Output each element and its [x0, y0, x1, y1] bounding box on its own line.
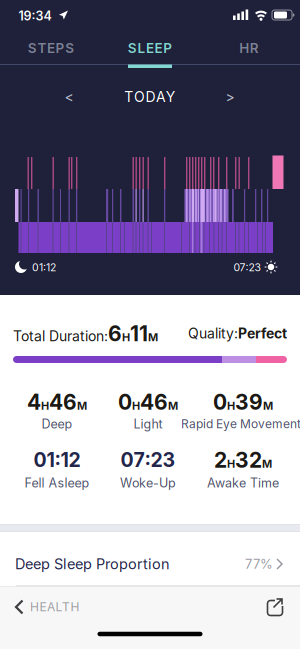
- staticText: HEALTH: [30, 600, 79, 614]
- button[interactable]: Back to Health: [14, 587, 118, 627]
- button[interactable]: STEPS: [4, 31, 98, 64]
- staticText: <: [64, 88, 73, 105]
- staticText: STEPS: [28, 40, 74, 56]
- staticText: TODAY: [124, 88, 176, 105]
- staticText: Woke-Up: [120, 475, 176, 490]
- staticText: 01:12: [32, 261, 56, 274]
- staticText: SLEEP: [128, 40, 172, 56]
- staticText: Total Duration:6H11M: [13, 321, 158, 346]
- staticText: >: [225, 88, 234, 105]
- staticText: 0H46M: [118, 390, 178, 414]
- button[interactable]: SLEEP: [103, 31, 197, 64]
- button[interactable]: Next day: [215, 84, 245, 110]
- staticText: HR: [239, 40, 259, 56]
- staticText: Fell Asleep: [24, 475, 89, 490]
- staticText: Awake Time: [207, 475, 279, 490]
- staticText: 0H39M: [213, 390, 273, 414]
- staticText: Rapid Eye Movement: [181, 417, 300, 431]
- staticText: 19:34: [18, 8, 51, 23]
- button[interactable]: Deep Sleep Proportion: [0, 532, 300, 586]
- staticText: 07:23: [120, 448, 175, 472]
- staticText: Quality:Perfect: [188, 325, 287, 342]
- staticText: 01:12: [33, 448, 80, 472]
- staticText: 2H32M: [214, 448, 272, 472]
- staticText: Deep: [41, 416, 72, 431]
- staticText: 4H46M: [27, 390, 87, 414]
- staticText: Light: [133, 416, 162, 431]
- staticText: 07:23: [233, 261, 260, 274]
- staticText: 77%: [245, 556, 273, 572]
- button[interactable]: Share: [266, 595, 288, 619]
- staticText: Deep Sleep Proportion: [15, 555, 170, 573]
- button[interactable]: HR: [202, 31, 296, 64]
- button[interactable]: Previous day: [54, 84, 84, 110]
